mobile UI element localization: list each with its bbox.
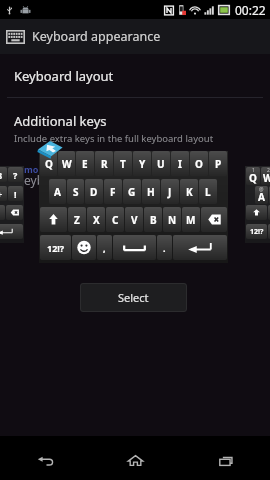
- button[interactable]: 1: [245, 166, 270, 243]
- button[interactable]: N: [163, 207, 181, 232]
- staticText: .: [163, 242, 166, 254]
- button[interactable]: [0, 224, 23, 239]
- button[interactable]: @: [269, 186, 270, 204]
- staticText: Select: [118, 290, 149, 305]
- staticText: D: [90, 185, 98, 199]
- button[interactable]: [72, 235, 96, 260]
- staticText: B: [150, 213, 157, 227]
- button[interactable]: L: [199, 179, 217, 204]
- staticText: H: [147, 185, 155, 199]
- button[interactable]: E: [76, 151, 94, 176]
- staticText: !: [14, 188, 17, 200]
- button[interactable]: [113, 235, 156, 260]
- button[interactable]: [40, 207, 67, 232]
- staticText: 8: [0, 169, 3, 181]
- button[interactable]: +: [0, 186, 7, 201]
- button[interactable]: Select: [80, 283, 187, 312]
- button[interactable]: F: [104, 179, 122, 204]
- button[interactable]: 1: [246, 167, 260, 185]
- button[interactable]: X: [87, 207, 105, 232]
- staticText: I: [178, 157, 182, 171]
- button[interactable]: [173, 235, 227, 260]
- button[interactable]: 12!?: [40, 235, 71, 260]
- button[interactable]: 8: [0, 167, 7, 182]
- staticText: 12!?: [250, 227, 264, 237]
- button[interactable]: Z: [68, 207, 86, 232]
- button[interactable]: U: [152, 151, 170, 176]
- staticText: G: [128, 185, 136, 199]
- button[interactable]: M: [182, 207, 200, 232]
- staticText: E: [82, 157, 88, 171]
- button[interactable]: V: [125, 207, 143, 232]
- staticText: 2: [267, 167, 270, 174]
- staticText: M: [186, 213, 196, 227]
- button[interactable]: Q: [40, 151, 57, 176]
- button[interactable]: 2: [261, 167, 270, 185]
- staticText: W: [62, 157, 72, 171]
- button[interactable]: A: [49, 179, 66, 204]
- button[interactable]: D: [85, 179, 103, 204]
- staticText: Keyboard appearance: [32, 28, 161, 45]
- button[interactable]: H: [142, 179, 160, 204]
- button[interactable]: [246, 205, 267, 220]
- button[interactable]: I: [171, 151, 189, 176]
- staticText: O: [195, 157, 203, 171]
- staticText: ?: [13, 169, 18, 181]
- button[interactable]: ?: [8, 167, 23, 182]
- button[interactable]: R: [95, 151, 113, 176]
- staticText: eyb: [24, 172, 45, 188]
- staticText: 12!?: [47, 242, 65, 254]
- button[interactable]: ,: [97, 235, 112, 260]
- staticText: R: [101, 157, 108, 171]
- button[interactable]: K: [180, 179, 198, 204]
- staticText: S: [73, 185, 79, 199]
- staticText: 00:22: [235, 2, 266, 18]
- staticText: A: [54, 185, 61, 199]
- staticText: P: [215, 157, 222, 171]
- button[interactable]: .: [157, 235, 172, 260]
- staticText: U: [157, 157, 165, 171]
- staticText: F: [110, 185, 116, 199]
- button[interactable]: S: [67, 179, 84, 204]
- staticText: J: [168, 185, 172, 199]
- staticText: A: [258, 190, 265, 204]
- staticText: Y: [139, 157, 146, 171]
- button[interactable]: 1: [0, 166, 24, 243]
- button[interactable]: O: [190, 151, 208, 176]
- staticText: X: [93, 213, 100, 227]
- staticText: 1: [252, 167, 255, 174]
- button[interactable]: [268, 224, 270, 239]
- button[interactable]: @: [255, 186, 268, 204]
- button[interactable]: Keyboard appearance: [0, 19, 270, 54]
- button[interactable]: [201, 207, 227, 232]
- staticText: Q: [45, 157, 53, 171]
- button[interactable]: [6, 205, 23, 220]
- staticText: W: [263, 171, 270, 185]
- button[interactable]: Home: [90, 436, 180, 480]
- button[interactable]: Y: [133, 151, 151, 176]
- button[interactable]: !: [8, 186, 23, 201]
- button[interactable]: Additional keys: [0, 98, 270, 145]
- button[interactable]: Keyboard layout: [0, 54, 270, 97]
- staticText: T: [120, 157, 126, 171]
- staticText: L: [205, 185, 211, 199]
- button[interactable]: Recent apps: [180, 436, 270, 480]
- button[interactable]: G: [123, 179, 141, 204]
- button[interactable]: W: [58, 151, 75, 176]
- button[interactable]: C: [106, 207, 124, 232]
- button[interactable]: J: [161, 179, 179, 204]
- staticText: +: [0, 188, 3, 200]
- staticText: Additional keys: [14, 112, 107, 130]
- staticText: Include extra keys in the full keyboard …: [14, 132, 214, 145]
- button[interactable]: P: [209, 151, 227, 176]
- button[interactable]: T: [114, 151, 132, 176]
- button[interactable]: Back: [0, 436, 90, 480]
- button[interactable]: B: [144, 207, 162, 232]
- staticText: V: [131, 213, 138, 227]
- button[interactable]: 12!?: [246, 224, 267, 239]
- button[interactable]: Z: [268, 205, 270, 220]
- staticText: @: [259, 186, 264, 193]
- button[interactable]: /: [0, 205, 5, 220]
- staticText: K: [186, 185, 193, 199]
- button[interactable]: Q: [39, 151, 228, 263]
